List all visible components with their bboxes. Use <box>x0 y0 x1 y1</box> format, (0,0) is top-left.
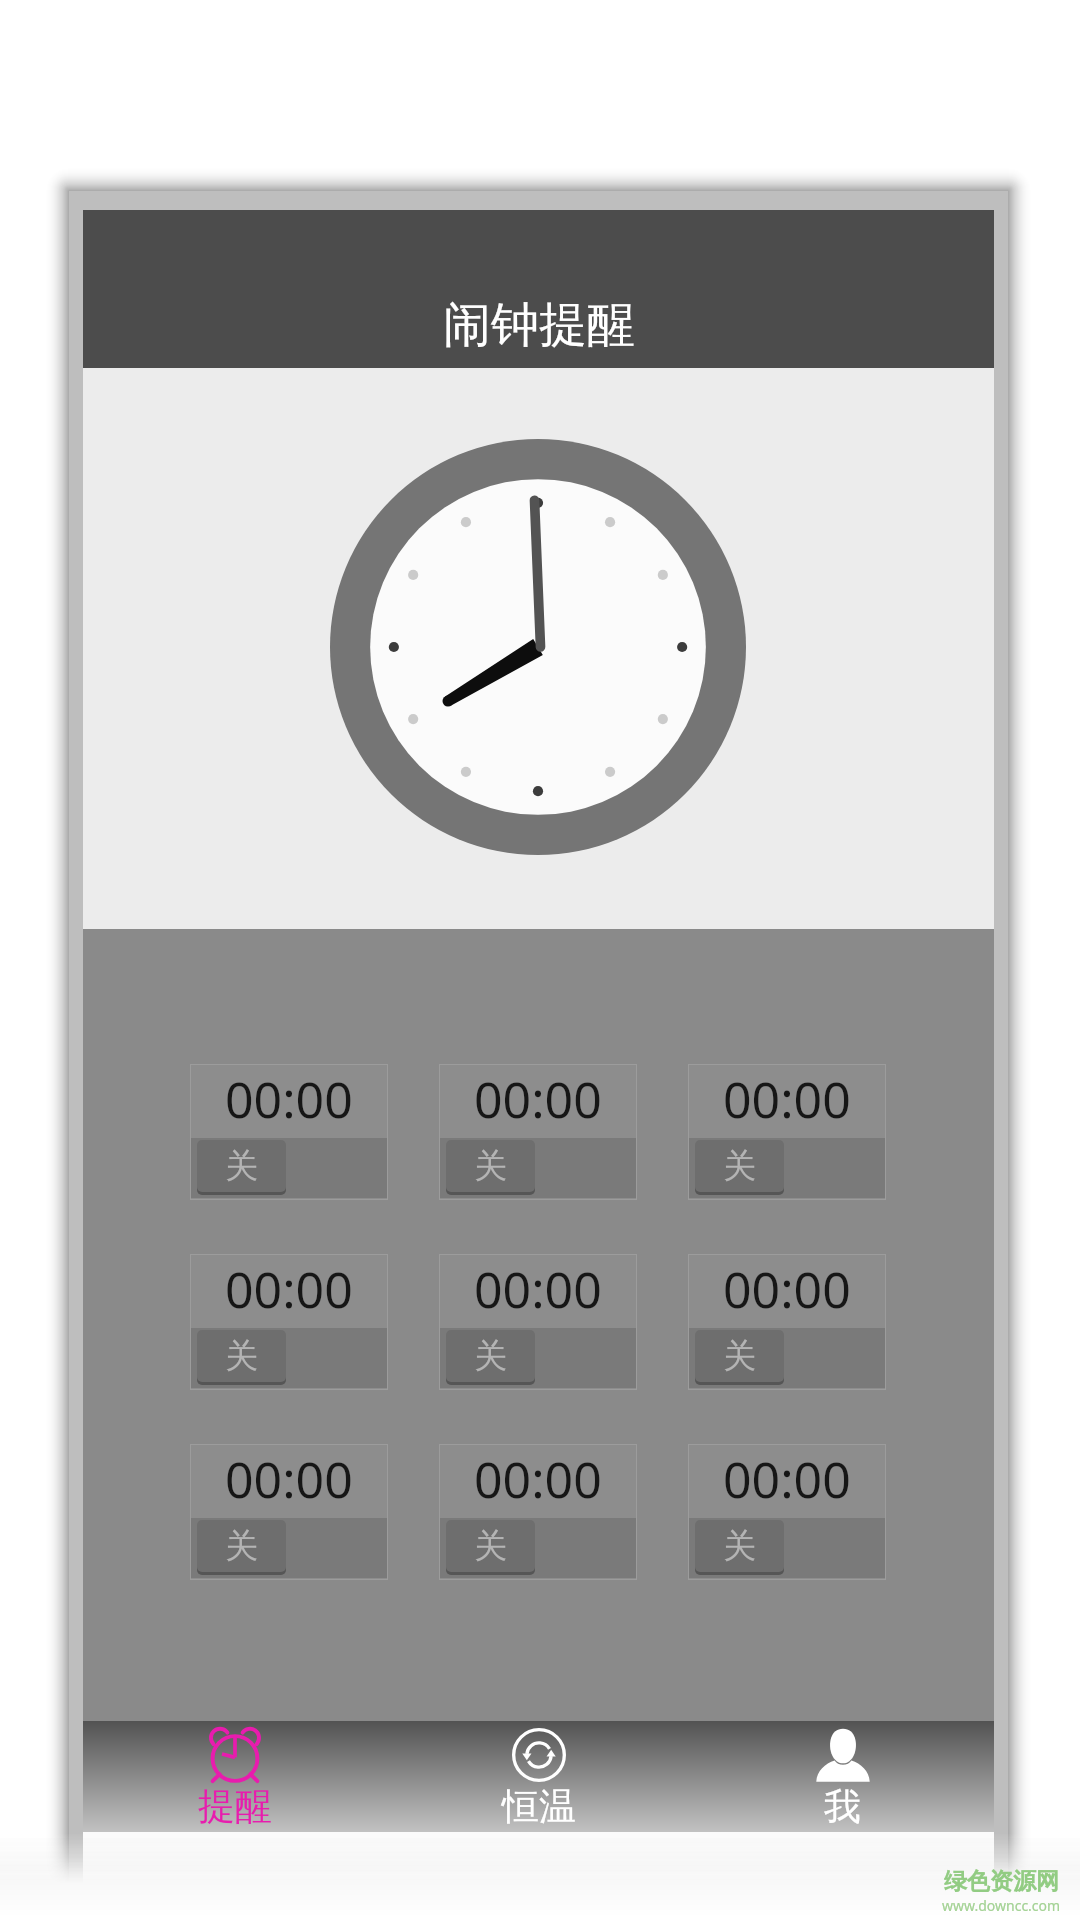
other: 我 <box>816 1728 870 1782</box>
button[interactable]: 00:00 <box>190 1444 388 1580</box>
button[interactable]: 00:00 <box>190 1064 388 1200</box>
staticText: 关 <box>723 1525 756 1567</box>
button[interactable]: 关 <box>695 1330 784 1385</box>
staticText: 关 <box>225 1525 258 1567</box>
staticText: 00:00 <box>723 1065 851 1132</box>
staticText: 我 <box>824 1783 861 1830</box>
staticText: 00:00 <box>723 1445 851 1512</box>
staticText: 关 <box>723 1145 756 1187</box>
other: 提醒 <box>208 1728 262 1782</box>
staticText: www.downcc.com <box>942 1896 1061 1915</box>
button[interactable]: 00:00 <box>439 1444 637 1580</box>
staticText: 00:00 <box>225 1445 353 1512</box>
button[interactable]: 00:00 <box>439 1064 637 1200</box>
staticText: 闹钟提醒 <box>443 295 635 355</box>
staticText: 绿色资源网 <box>944 1867 1059 1896</box>
staticText: 关 <box>474 1335 507 1377</box>
staticText: 00:00 <box>474 1255 602 1322</box>
button[interactable]: 00:00 <box>190 1254 388 1390</box>
button[interactable]: 关 <box>446 1520 535 1575</box>
staticText: 00:00 <box>474 1065 602 1132</box>
button[interactable]: 提醒 <box>83 1721 386 1832</box>
button[interactable]: 00:00 <box>688 1254 886 1390</box>
button[interactable]: 我 <box>691 1721 994 1832</box>
staticText: 恒温 <box>502 1783 576 1830</box>
staticText: 00:00 <box>474 1445 602 1512</box>
other: 恒温 <box>512 1728 566 1782</box>
button[interactable]: 恒温 <box>386 1721 691 1832</box>
staticText: 关 <box>225 1145 258 1187</box>
button[interactable]: 00:00 <box>688 1064 886 1200</box>
staticText: 00:00 <box>723 1255 851 1322</box>
staticText: 提醒 <box>198 1783 272 1830</box>
button[interactable]: 00:00 <box>688 1444 886 1580</box>
button[interactable]: 关 <box>197 1330 286 1385</box>
staticText: 关 <box>474 1145 507 1187</box>
staticText: 关 <box>474 1525 507 1567</box>
button[interactable]: 关 <box>197 1520 286 1575</box>
button[interactable]: 关 <box>695 1140 784 1195</box>
button[interactable]: 关 <box>446 1140 535 1195</box>
button[interactable]: 关 <box>446 1330 535 1385</box>
button[interactable]: 关 <box>197 1140 286 1195</box>
button[interactable]: 00:00 <box>439 1254 637 1390</box>
staticText: 00:00 <box>225 1255 353 1322</box>
staticText: 关 <box>225 1335 258 1377</box>
staticText: 00:00 <box>225 1065 353 1132</box>
staticText: 关 <box>723 1335 756 1377</box>
button[interactable]: 关 <box>695 1520 784 1575</box>
